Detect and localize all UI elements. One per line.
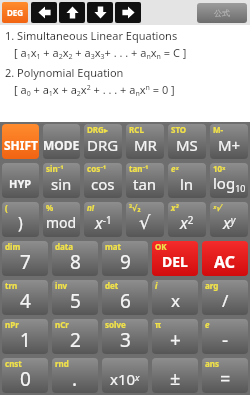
staticText: solve	[105, 319, 126, 330]
staticText: π	[155, 319, 161, 330]
button[interactable]: 4	[2, 280, 48, 315]
staticText: MS	[176, 135, 198, 155]
button[interactable]: Left	[31, 2, 57, 23]
staticText: data	[55, 241, 74, 252]
button[interactable]: 5	[52, 280, 98, 315]
button[interactable]: x³	[168, 202, 206, 237]
staticText: mod	[46, 213, 77, 232]
staticText: ³√₂	[129, 202, 141, 213]
button[interactable]: MODE	[43, 124, 80, 159]
staticText: ±	[170, 366, 181, 391]
staticText: 1. Simultaneous Linear Equations	[5, 28, 178, 43]
button[interactable]: Up	[59, 2, 85, 23]
staticText: dim	[5, 241, 21, 252]
button[interactable]: DEL	[152, 241, 198, 276]
button[interactable]: ln	[168, 163, 206, 198]
button[interactable]: HYP	[2, 163, 39, 198]
button[interactable]: 1	[2, 319, 48, 354]
button[interactable]: key	[102, 358, 148, 393]
staticText: MODE	[43, 137, 80, 153]
staticText: [ a0 + a1x + a2x2 + . . . + anxn = 0 ]	[14, 82, 175, 98]
button[interactable]: 3	[102, 319, 148, 354]
staticText: 10ˣ	[213, 163, 226, 174]
button[interactable]: /	[202, 280, 248, 315]
button[interactable]: √	[126, 202, 164, 237]
button[interactable]: sin	[43, 163, 80, 198]
staticText: x-1	[95, 212, 112, 234]
button[interactable]: n!	[84, 202, 122, 237]
staticText: MR	[134, 135, 157, 155]
staticText: DEG	[7, 7, 24, 18]
button[interactable]: mod	[43, 202, 80, 237]
staticText: 7	[20, 249, 31, 275]
staticText: DEL	[162, 252, 188, 271]
staticText: STO	[171, 124, 187, 135]
staticText: nPr	[5, 319, 19, 330]
staticText: x2	[180, 212, 194, 234]
staticText: .	[72, 366, 78, 392]
staticText: 8	[70, 249, 81, 275]
staticText: sin	[51, 174, 72, 194]
button[interactable]: MR	[126, 124, 164, 159]
button[interactable]: x	[152, 280, 198, 315]
staticText: sin⁻¹	[46, 163, 64, 174]
staticText: x	[171, 289, 180, 312]
staticText: tan	[133, 174, 157, 194]
staticText: M+	[218, 135, 241, 155]
button[interactable]: MS	[168, 124, 206, 159]
staticText: det	[105, 280, 119, 291]
button[interactable]: M+	[210, 124, 248, 159]
button[interactable]: =	[202, 358, 248, 393]
staticText: nCr	[55, 319, 69, 330]
staticText: 2	[70, 327, 81, 353]
staticText: xy	[223, 212, 236, 234]
button[interactable]: Down	[87, 2, 113, 23]
button[interactable]: DRG	[84, 124, 122, 159]
button[interactable]: 9	[102, 241, 148, 276]
staticText: ˣ√	[213, 202, 222, 213]
staticText: )	[18, 212, 23, 234]
staticText: log10	[213, 173, 246, 194]
staticText: 0	[20, 366, 31, 392]
button[interactable]: 7	[2, 241, 48, 276]
button[interactable]: ±	[152, 358, 198, 393]
button[interactable]: +	[152, 319, 198, 354]
button[interactable]: tan	[126, 163, 164, 198]
staticText: cos⁻¹	[87, 163, 107, 174]
button[interactable]: .	[52, 358, 98, 393]
button[interactable]: ˣ√	[210, 202, 248, 237]
staticText: DRG	[87, 135, 119, 155]
button[interactable]: 0	[2, 358, 48, 393]
button[interactable]: 8	[52, 241, 98, 276]
button[interactable]: cos	[84, 163, 122, 198]
staticText: (	[5, 202, 8, 213]
button[interactable]: AC	[202, 241, 248, 276]
staticText: e	[205, 319, 210, 330]
staticText: x10x	[110, 369, 140, 389]
staticText: HYP	[9, 176, 32, 191]
staticText: 6	[120, 288, 131, 314]
staticText: arg	[205, 280, 219, 291]
button[interactable]: SHIFT	[2, 124, 39, 159]
staticText: cos	[91, 174, 115, 194]
staticText: 2. Polynomial Equation	[5, 65, 124, 80]
staticText: 9	[120, 249, 131, 275]
staticText: M-	[213, 124, 224, 135]
staticText: ans	[205, 358, 220, 369]
staticText: RCL	[129, 124, 144, 135]
button[interactable]: -	[202, 319, 248, 354]
staticText: 4	[20, 288, 31, 314]
button[interactable]: DEG	[2, 2, 28, 23]
button[interactable]: Formula	[197, 3, 247, 23]
button[interactable]: 2	[52, 319, 98, 354]
staticText: 3	[120, 327, 131, 353]
button[interactable]: Right	[115, 2, 141, 23]
staticText: x³	[171, 202, 179, 213]
staticText: tan⁻¹	[129, 163, 149, 174]
button[interactable]: 10ˣ	[210, 163, 248, 198]
button[interactable]: )	[2, 202, 39, 237]
staticText: [ a1x1 + a2x2 + a3x3+ . . . + anxn = C ]	[14, 45, 187, 61]
staticText: DRG▸	[87, 124, 108, 135]
button[interactable]: 6	[102, 280, 148, 315]
staticText: eˣ	[171, 163, 179, 174]
